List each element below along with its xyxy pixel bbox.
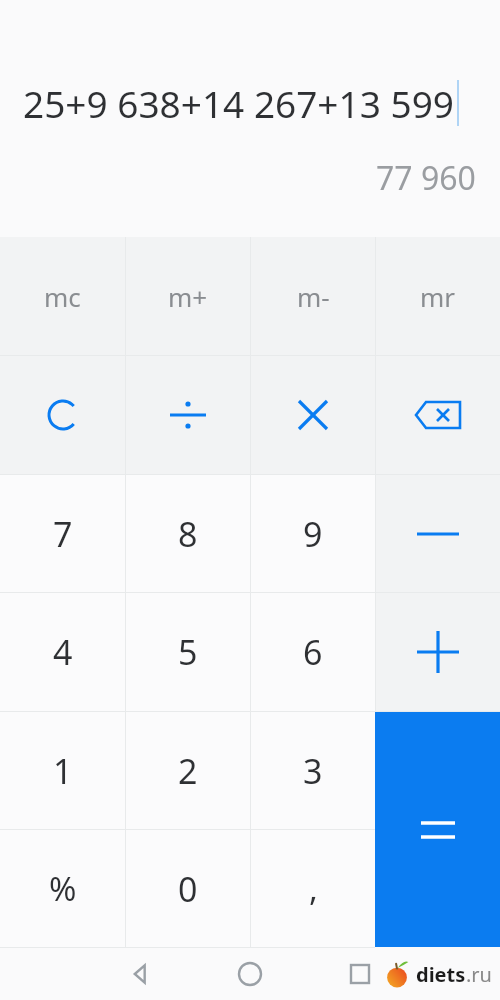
button[interactable]: % bbox=[0, 830, 125, 947]
button[interactable]: 3 bbox=[251, 712, 375, 829]
staticText: .ru bbox=[466, 961, 492, 988]
staticText: , bbox=[309, 866, 318, 911]
button[interactable]: Multiply bbox=[251, 356, 375, 474]
button[interactable]: 2 bbox=[126, 712, 250, 829]
button[interactable]: Backspace bbox=[376, 356, 500, 474]
button[interactable]: 6 bbox=[251, 593, 375, 711]
staticText: diets bbox=[416, 961, 466, 988]
button[interactable]: 5 bbox=[126, 593, 250, 711]
button[interactable]: m+ bbox=[126, 237, 250, 355]
button[interactable]: Divide bbox=[126, 356, 250, 474]
staticText: 7 bbox=[53, 511, 73, 557]
staticText: 77 960 bbox=[376, 156, 476, 200]
button[interactable]: m- bbox=[251, 237, 375, 355]
button[interactable]: , bbox=[251, 830, 375, 947]
button[interactable]: Minus bbox=[376, 475, 500, 592]
button[interactable]: 7 bbox=[0, 475, 125, 592]
staticText: 1 bbox=[53, 748, 73, 794]
button[interactable]: 0 bbox=[126, 830, 250, 947]
staticText: mc bbox=[44, 279, 81, 314]
staticText: m+ bbox=[168, 279, 208, 314]
button[interactable]: Clear bbox=[0, 356, 125, 474]
staticText: 0 bbox=[178, 866, 198, 912]
button[interactable]: Recents bbox=[328, 948, 392, 1000]
button[interactable]: Back bbox=[108, 948, 172, 1000]
staticText: 5 bbox=[178, 629, 198, 675]
staticText: m- bbox=[297, 279, 330, 314]
button[interactable]: mr bbox=[376, 237, 500, 355]
button[interactable]: 1 bbox=[0, 712, 125, 829]
button[interactable]: 8 bbox=[126, 475, 250, 592]
button[interactable]: Plus bbox=[376, 593, 500, 711]
staticText: 25+9 638+14 267+13 599 bbox=[23, 78, 454, 128]
staticText: % bbox=[49, 866, 77, 911]
staticText: 2 bbox=[178, 748, 198, 794]
staticText: 6 bbox=[303, 629, 323, 675]
button[interactable]: Home bbox=[218, 948, 282, 1000]
staticText: 4 bbox=[53, 629, 73, 675]
staticText: 9 bbox=[303, 511, 323, 557]
staticText: 8 bbox=[178, 511, 198, 557]
button[interactable]: Equals bbox=[375, 712, 500, 947]
staticText: 3 bbox=[303, 748, 323, 794]
button[interactable]: 4 bbox=[0, 593, 125, 711]
staticText: mr bbox=[420, 279, 456, 314]
button[interactable]: 9 bbox=[251, 475, 375, 592]
button[interactable]: mc bbox=[0, 237, 125, 355]
